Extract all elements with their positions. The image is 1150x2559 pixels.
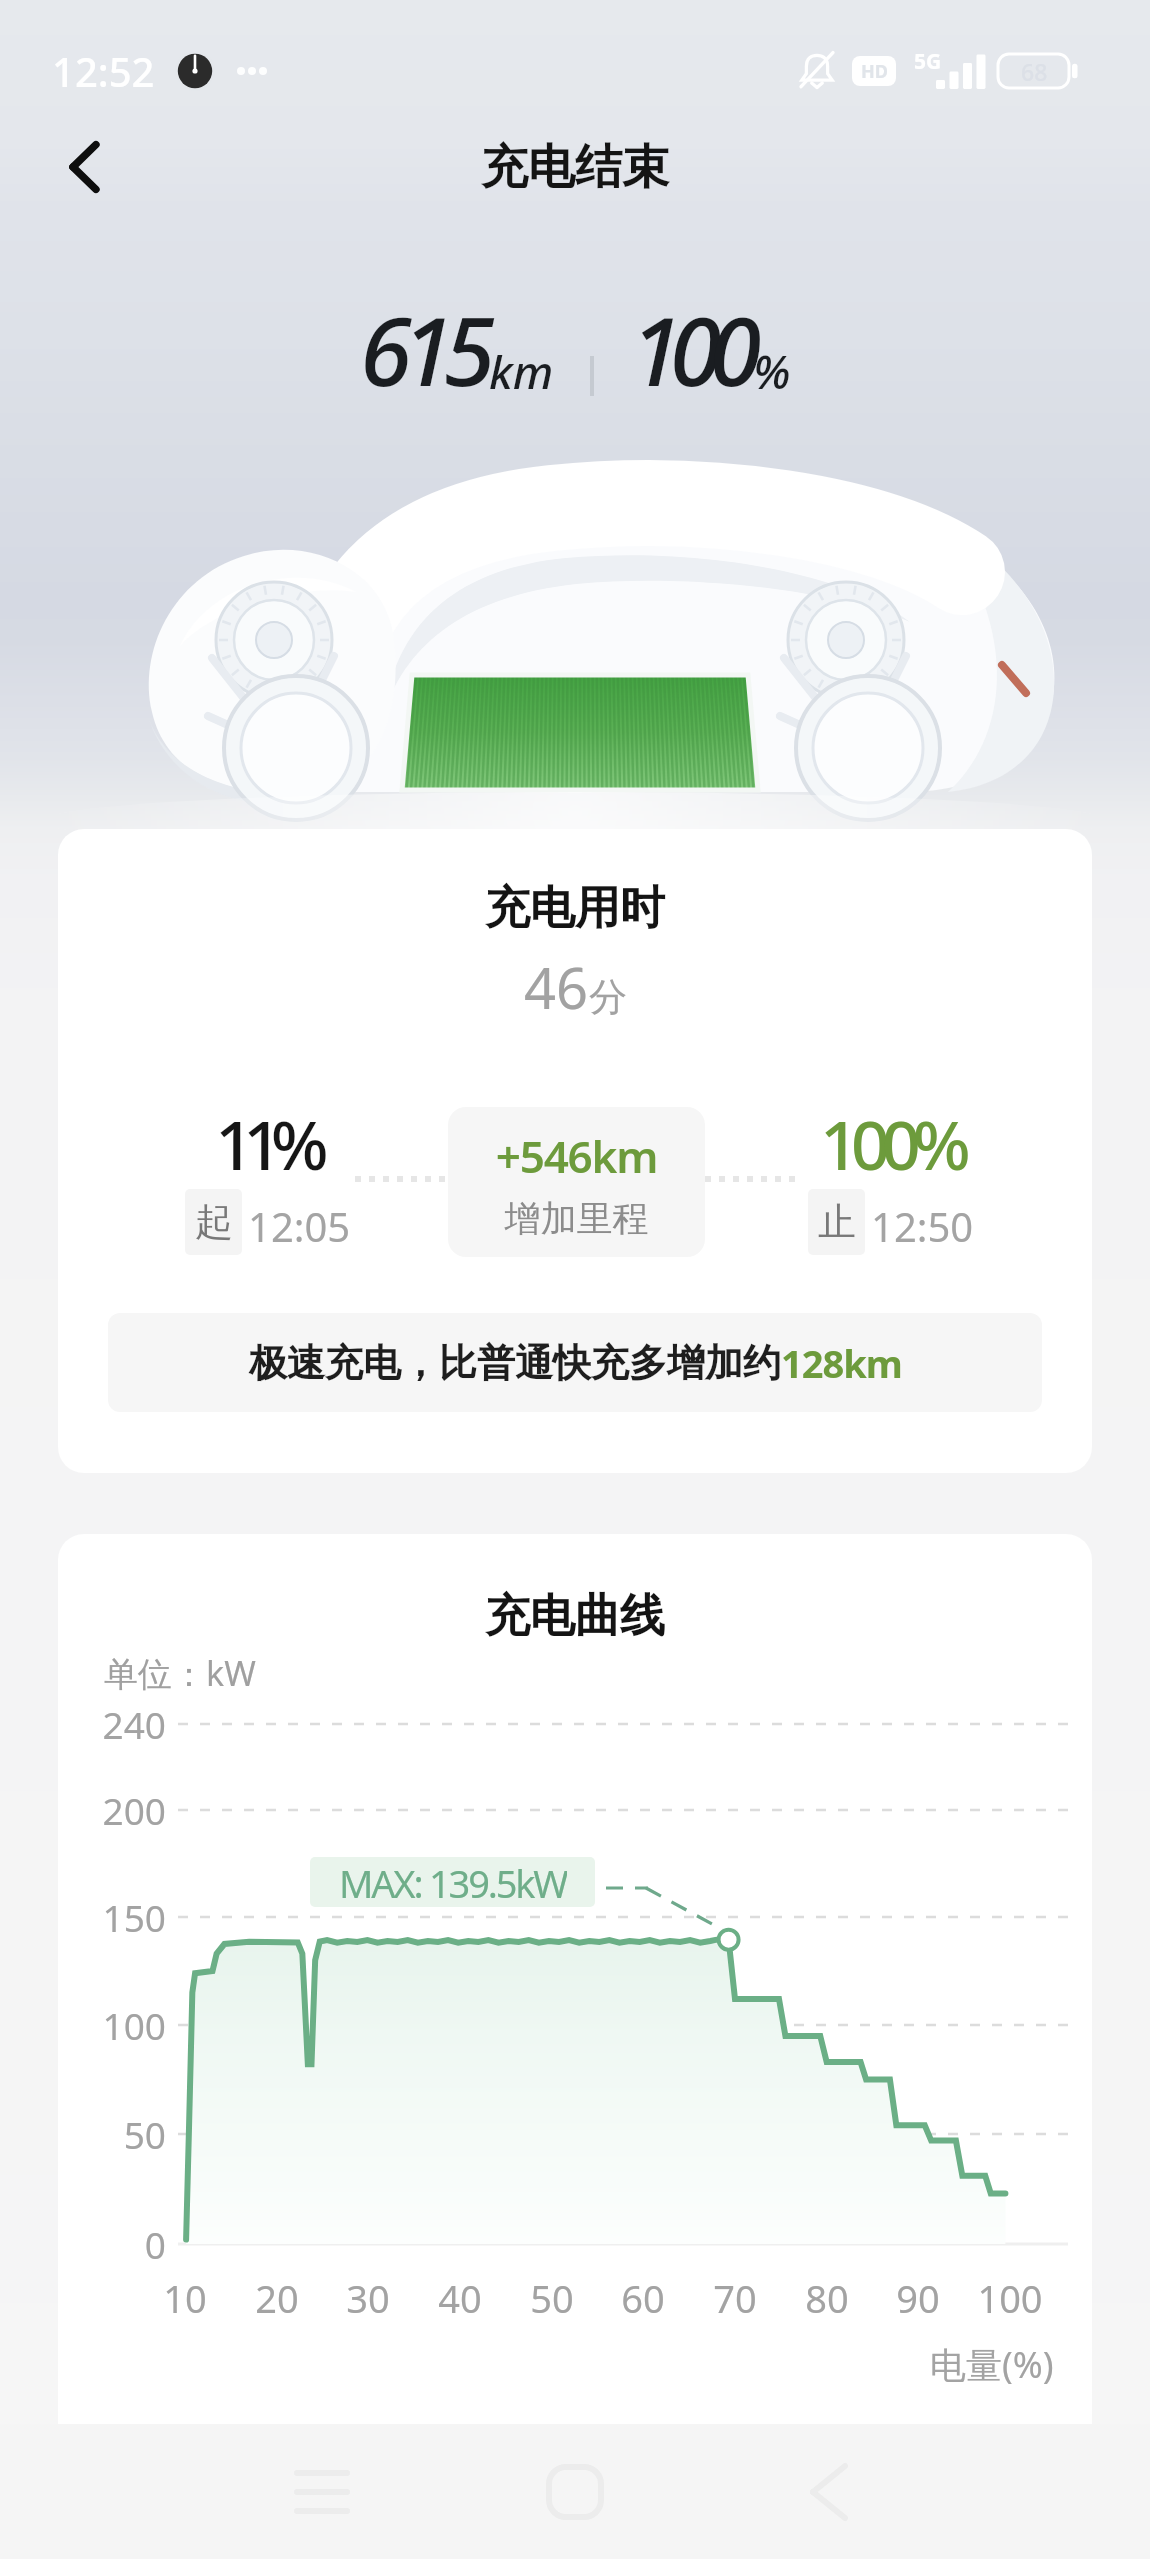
staticText: 70 xyxy=(713,2272,757,2324)
staticText: 5G xyxy=(914,47,942,76)
staticText: 12:50 xyxy=(871,1199,974,1253)
staticText: 100 xyxy=(977,2272,1043,2324)
staticText: 40 xyxy=(438,2272,482,2324)
staticText: 50 xyxy=(530,2272,574,2324)
staticText: 615 xyxy=(360,286,486,414)
staticText: 46 xyxy=(524,949,589,1025)
staticText: 240 xyxy=(102,1699,166,1749)
staticText: 150 xyxy=(102,1892,166,1942)
staticText: 单位：kW xyxy=(104,1650,256,1696)
staticText: 12:05 xyxy=(248,1199,351,1253)
staticText: 10 xyxy=(163,2272,207,2324)
staticText: 充电结束 xyxy=(481,138,669,197)
staticText: 20 xyxy=(255,2272,299,2324)
staticText: 80 xyxy=(805,2272,849,2324)
staticText: 电量(%) xyxy=(930,2340,1054,2389)
staticText: 100 xyxy=(630,286,750,414)
staticText: 分 xyxy=(589,973,627,1021)
button[interactable]: Back xyxy=(38,119,134,215)
staticText: 68 xyxy=(1021,56,1048,87)
staticText: 128km xyxy=(781,1337,902,1389)
staticText: 11% xyxy=(215,1097,318,1190)
staticText: 增加里程 xyxy=(448,1196,705,1241)
staticText: km xyxy=(489,340,554,403)
staticText: HD xyxy=(861,59,888,84)
staticText: 极速充电，比普通快充多增加约 xyxy=(249,1339,781,1387)
staticText: 12:52 xyxy=(52,44,155,98)
staticText: 起 xyxy=(195,1198,233,1246)
staticText: 止 xyxy=(818,1198,856,1246)
staticText: +546km xyxy=(448,1126,705,1186)
staticText: 60 xyxy=(621,2272,665,2324)
staticText: 0 xyxy=(144,2219,166,2269)
staticText: 充电曲线 xyxy=(58,1588,1092,1645)
staticText: 100% xyxy=(820,1097,963,1190)
staticText: 100 xyxy=(102,2000,166,2050)
staticText: 90 xyxy=(896,2272,940,2324)
staticText: 50 xyxy=(123,2109,166,2159)
staticText: % xyxy=(753,340,791,403)
staticText: 30 xyxy=(346,2272,390,2324)
staticText: 充电用时 xyxy=(58,880,1092,937)
staticText: MAX: 139.5kW xyxy=(339,1857,567,1907)
staticText: 200 xyxy=(102,1785,166,1835)
